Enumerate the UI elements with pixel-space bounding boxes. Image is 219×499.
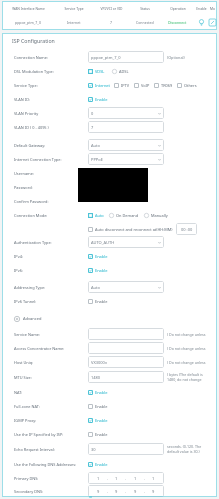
staticText: ( bytes (The default is 1480, do not cha… bbox=[167, 372, 211, 382]
button[interactable] bbox=[114, 83, 119, 88]
button[interactable]: Enable bbox=[88, 97, 108, 102]
button[interactable] bbox=[88, 213, 93, 218]
staticText: Internet bbox=[95, 83, 110, 88]
button[interactable]: Enable bbox=[88, 432, 108, 437]
button[interactable] bbox=[88, 432, 93, 437]
staticText: Enable bbox=[196, 6, 207, 10]
button[interactable] bbox=[88, 254, 93, 259]
button[interactable] bbox=[88, 268, 93, 273]
button[interactable]: 1 bbox=[88, 472, 164, 484]
staticText: Service Type: bbox=[14, 83, 80, 88]
button[interactable]: Manually bbox=[144, 213, 168, 218]
button[interactable]: Enable bbox=[197, 18, 206, 27]
staticText: 1 bbox=[97, 476, 100, 481]
button[interactable] bbox=[112, 69, 117, 74]
button[interactable]: Enable bbox=[88, 254, 108, 259]
button[interactable]: 0 bbox=[88, 107, 164, 119]
staticText: 30 bbox=[91, 447, 96, 452]
staticText: VoIP bbox=[141, 83, 150, 88]
button[interactable]: Edit bbox=[208, 18, 217, 27]
button[interactable] bbox=[88, 328, 164, 340]
staticText: Authentication Type: bbox=[14, 240, 80, 245]
staticText: On Demand bbox=[116, 213, 139, 218]
button[interactable] bbox=[88, 342, 164, 354]
staticText: IPv6 Tunnel: bbox=[14, 299, 80, 304]
staticText: Auto bbox=[95, 213, 104, 218]
button[interactable]: Disconnect bbox=[161, 15, 194, 30]
staticText: Enable bbox=[95, 390, 108, 395]
button[interactable]: Internet bbox=[88, 83, 110, 88]
button[interactable] bbox=[88, 83, 93, 88]
button[interactable] bbox=[134, 83, 139, 88]
button[interactable]: 9 bbox=[88, 485, 164, 497]
button[interactable]: Enable bbox=[88, 299, 108, 304]
staticText: Echo Request Interval: bbox=[14, 447, 80, 452]
button[interactable]: VX3000v bbox=[88, 356, 164, 368]
staticText: 9 bbox=[152, 489, 155, 494]
button[interactable] bbox=[144, 213, 149, 218]
button[interactable] bbox=[88, 462, 93, 467]
staticText: Others bbox=[184, 83, 197, 88]
button[interactable]: pppoe_ptm_7_0 bbox=[88, 51, 164, 63]
staticText: IPv6: bbox=[14, 268, 80, 273]
button[interactable]: Enable bbox=[88, 268, 108, 273]
staticText: 1 bbox=[115, 476, 118, 481]
button[interactable]: TR069 bbox=[154, 83, 173, 88]
button[interactable]: Enable bbox=[88, 390, 108, 395]
staticText: ( Do not change unless necessary.) bbox=[167, 346, 211, 351]
staticText: Connection Name: bbox=[14, 55, 80, 60]
button[interactable]: 7 bbox=[88, 121, 164, 133]
button[interactable]: 30 bbox=[88, 443, 164, 455]
button[interactable]: Auto disconnect and reconnect at(HH:MM) bbox=[88, 227, 173, 232]
button[interactable]: Auto bbox=[88, 213, 104, 218]
staticText: PPPoE bbox=[91, 157, 103, 162]
button[interactable] bbox=[88, 69, 93, 74]
staticText: . bbox=[144, 489, 146, 494]
button[interactable]: Advanced bbox=[14, 312, 217, 325]
button[interactable]: ADSL bbox=[112, 69, 129, 74]
staticText: VX3000v bbox=[91, 360, 107, 365]
button[interactable] bbox=[88, 97, 93, 102]
button[interactable] bbox=[88, 390, 93, 395]
button[interactable] bbox=[109, 213, 114, 218]
staticText: Full-cone NAT: bbox=[14, 404, 80, 409]
staticText: Access Concentrator Name: bbox=[14, 346, 80, 351]
button[interactable]: On Demand bbox=[109, 213, 139, 218]
staticText: Manually bbox=[151, 213, 168, 218]
staticText: Internet Connection Type: bbox=[14, 157, 80, 162]
staticText: 1480 bbox=[91, 375, 101, 380]
button[interactable] bbox=[177, 83, 182, 88]
staticText: IPTV bbox=[121, 83, 130, 88]
button[interactable]: 1480 bbox=[88, 371, 164, 383]
button[interactable] bbox=[154, 83, 159, 88]
staticText: Status bbox=[140, 6, 150, 10]
button[interactable]: AUTO_AUTH bbox=[88, 236, 164, 248]
button[interactable]: Enable bbox=[88, 404, 108, 409]
button[interactable] bbox=[88, 227, 93, 232]
button[interactable] bbox=[88, 299, 93, 304]
staticText: Enable bbox=[95, 97, 108, 102]
button[interactable]: PPPoE bbox=[88, 153, 164, 165]
button[interactable]: Auto bbox=[88, 139, 164, 151]
staticText: VPI/VCI or VID bbox=[100, 6, 123, 10]
button[interactable] bbox=[88, 418, 93, 423]
button[interactable]: VDSL bbox=[88, 69, 105, 74]
staticText: 1 bbox=[152, 476, 155, 481]
staticText: IGMP Proxy: bbox=[14, 418, 80, 423]
staticText: ADSL bbox=[119, 69, 129, 74]
button[interactable]: Enable bbox=[88, 462, 108, 467]
staticText: MTU Size: bbox=[14, 375, 80, 380]
staticText: Use the IP Specified by ISP: bbox=[14, 432, 80, 437]
button[interactable]: VoIP bbox=[134, 83, 150, 88]
button[interactable]: Enable bbox=[88, 418, 108, 423]
staticText: Host Uniq: bbox=[14, 360, 80, 365]
button[interactable]: 00 :00 bbox=[176, 223, 197, 235]
staticText: Enable bbox=[95, 462, 108, 467]
staticText: Enable bbox=[95, 254, 108, 259]
button[interactable]: Others bbox=[177, 83, 197, 88]
button[interactable]: IPTV bbox=[114, 83, 130, 88]
staticText: Enable bbox=[95, 268, 108, 273]
button[interactable] bbox=[88, 404, 93, 409]
button[interactable]: Auto bbox=[88, 281, 164, 293]
staticText: Connected bbox=[136, 20, 154, 25]
